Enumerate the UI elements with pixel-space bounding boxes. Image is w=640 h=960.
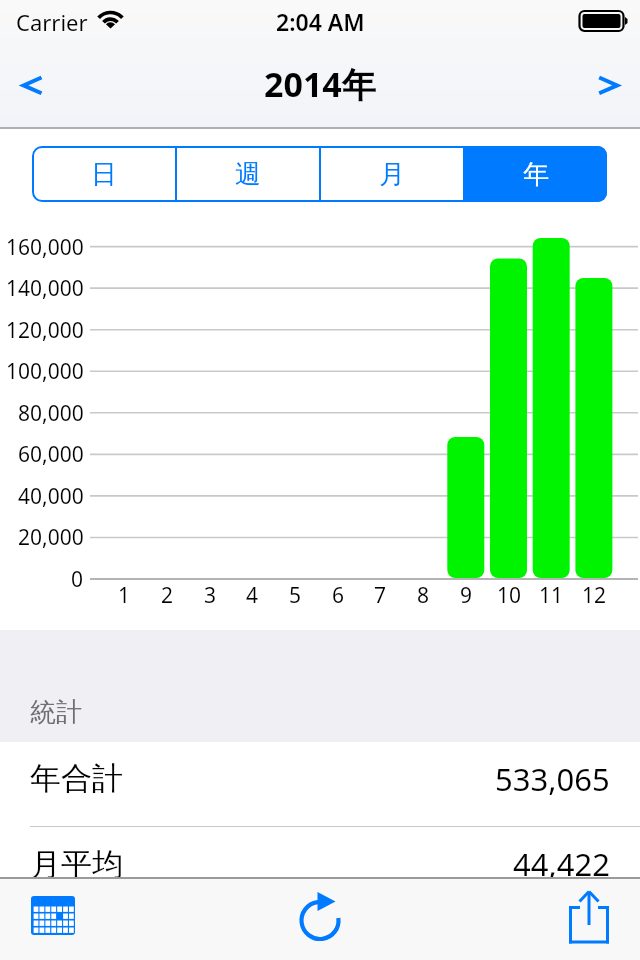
staticText: 9 [460,581,473,610]
staticText: 44,422 [513,843,610,885]
staticText: 533,065 [495,758,610,800]
staticText: 40,000 [18,482,84,511]
staticText: 6 [332,581,345,610]
staticText: 月平均 [30,845,123,884]
staticText: 年合計 [30,759,123,798]
staticText: 120,000 [6,316,84,345]
staticText: Carrier [16,7,88,37]
staticText: 3 [204,581,217,610]
staticText: 週 [235,158,261,191]
staticText: 160,000 [6,233,84,262]
button[interactable]: 年 [465,146,607,202]
button[interactable] [556,881,622,947]
button[interactable]: 月平均 [0,827,640,901]
staticText: 100,000 [6,357,84,386]
staticText: 4 [246,581,259,610]
staticText: 8 [417,581,430,610]
staticText: 1 [118,581,131,610]
staticText: 12 [582,581,607,610]
button[interactable]: 年合計 [0,742,640,826]
button[interactable] [12,63,56,107]
staticText: 7 [374,581,387,610]
staticText: 80,000 [18,399,84,428]
staticText: 60,000 [18,440,84,469]
button[interactable] [588,63,632,107]
staticText: 統計 [30,696,82,729]
staticText: 2:04 AM [276,6,365,37]
staticText: 20,000 [18,523,84,552]
staticText: 年 [523,158,549,191]
staticText: 2014年 [264,61,376,107]
staticText: 5 [289,581,302,610]
staticText: 月 [379,158,405,191]
staticText: 2 [161,581,174,610]
staticText: 140,000 [6,274,84,303]
button[interactable] [22,886,86,946]
button[interactable]: 日 [32,146,175,202]
button[interactable] [288,883,352,947]
staticText: 0 [71,565,84,594]
button[interactable]: 月 [321,146,463,202]
staticText: 10 [497,581,522,610]
button[interactable]: 週 [177,146,319,202]
staticText: 日 [91,158,117,191]
staticText: 11 [539,581,564,610]
